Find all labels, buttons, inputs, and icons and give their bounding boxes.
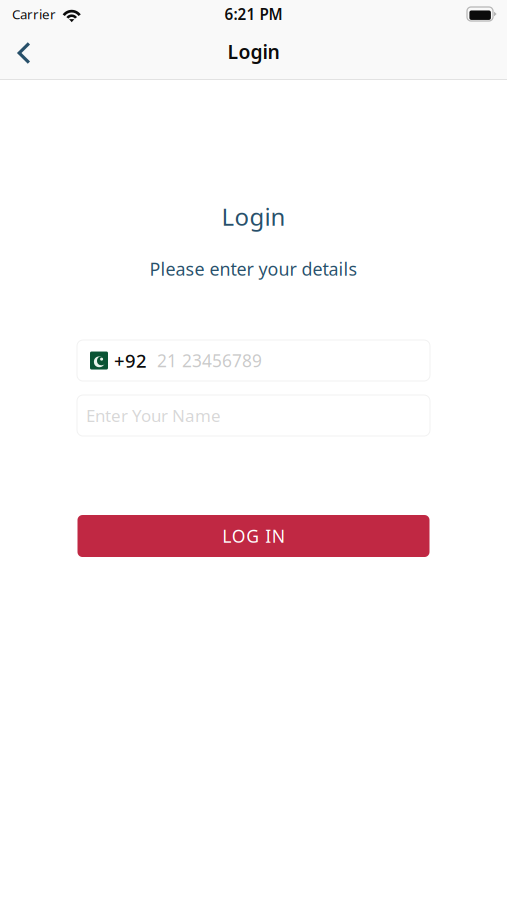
staticText: 21 23456789 [157,349,262,372]
staticText: Please enter your details [149,257,357,281]
button[interactable]: +92 [77,340,430,381]
staticText: LOG IN [222,524,285,548]
staticText: Login [227,38,279,65]
staticText: 6:21 PM [224,4,282,24]
button[interactable]: Back [2,31,46,75]
staticText: Carrier [12,5,56,23]
button[interactable]: LOG IN [77,515,429,557]
staticText: +92 [114,348,147,373]
staticText: Enter Your Name [86,404,221,427]
button[interactable]: Enter Your Name [77,395,430,436]
staticText: Login [221,200,285,233]
